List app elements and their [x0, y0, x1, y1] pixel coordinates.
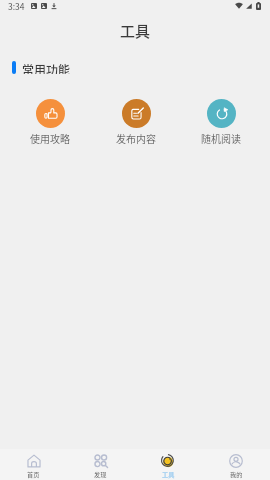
button[interactable]: 使用攻略 [9, 99, 91, 145]
button[interactable]: Discover [67, 449, 134, 480]
staticText: 常用功能 [22, 61, 71, 74]
button[interactable]: Home [0, 449, 67, 480]
button[interactable]: 随机阅读 [180, 99, 262, 145]
staticText: 使用攻略 [30, 131, 70, 145]
other: Tools [161, 454, 175, 468]
staticText: 工具 [162, 470, 175, 479]
staticText: 3:34 [8, 0, 25, 12]
other: Profile [229, 454, 243, 468]
button[interactable]: Profile [202, 449, 270, 480]
staticText: 首页 [27, 470, 40, 479]
other: Discover [94, 454, 108, 468]
button[interactable]: Tools [134, 449, 202, 480]
staticText: 我的 [230, 470, 243, 479]
staticText: 工具 [120, 20, 151, 42]
button[interactable]: 发布内容 [95, 99, 177, 145]
staticText: 随机阅读 [201, 131, 241, 145]
staticText: 发现 [94, 470, 107, 479]
other: Home [27, 454, 41, 468]
staticText: 发布内容 [116, 131, 156, 145]
